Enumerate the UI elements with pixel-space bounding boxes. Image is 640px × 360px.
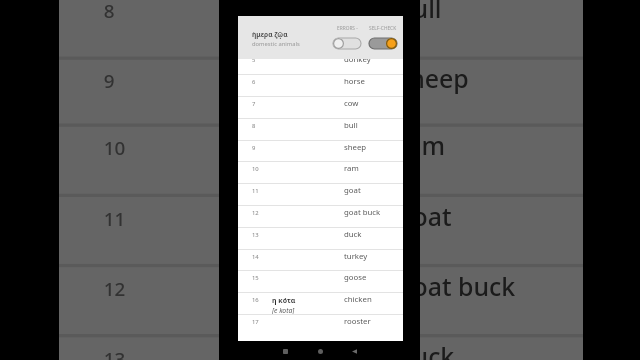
staticText: 9 — [104, 69, 116, 95]
button[interactable]: 9 — [59, 57, 583, 127]
staticText: 11 — [252, 187, 259, 195]
staticText: rooster — [344, 316, 371, 327]
staticText: 13 — [252, 231, 259, 239]
staticText: chicken — [344, 294, 372, 305]
staticText: horse — [344, 76, 365, 87]
staticText: 10 — [104, 136, 126, 162]
staticText: bull — [397, 0, 442, 28]
staticText: 7 — [252, 100, 256, 108]
staticText: ram — [397, 130, 445, 165]
staticText: donkey — [344, 54, 371, 65]
button[interactable]: 11 — [59, 194, 583, 264]
button[interactable]: 14 — [238, 249, 403, 271]
button[interactable]: Home — [309, 341, 331, 360]
button[interactable]: 8 — [59, 0, 583, 57]
button[interactable]: 11 — [238, 183, 403, 205]
staticText: 15 — [252, 274, 259, 282]
staticText: duck — [397, 340, 454, 360]
staticText: goat — [344, 185, 361, 196]
staticText: 13 — [104, 347, 126, 360]
staticText: 9 — [252, 144, 256, 152]
staticText: domestic animals — [252, 40, 300, 48]
staticText: 8 — [252, 122, 256, 130]
button[interactable]: ERRORS - — [333, 25, 361, 49]
button[interactable]: 17 — [238, 314, 403, 336]
button[interactable]: ἡμερα ζῷα — [238, 16, 403, 59]
staticText: 12 — [252, 209, 259, 217]
button[interactable]: 12 — [59, 264, 583, 334]
button[interactable]: 9 — [238, 140, 403, 162]
staticText: sheep — [344, 142, 367, 153]
button[interactable]: 10 — [238, 161, 403, 183]
staticText: ERRORS - — [337, 25, 358, 32]
staticText: bull — [344, 120, 358, 131]
staticText: 5 — [252, 56, 256, 64]
staticText: SELF-CHECK — [369, 25, 397, 32]
staticText: [e kota] — [272, 306, 295, 315]
staticText: 17 — [252, 318, 259, 326]
button[interactable]: 7 — [238, 96, 403, 118]
button[interactable]: 16 — [238, 292, 403, 314]
staticText: goat buck — [344, 207, 381, 218]
button[interactable]: SELF-CHECK — [369, 25, 397, 49]
button[interactable]: 15 — [238, 270, 403, 292]
staticText: ram — [344, 163, 359, 174]
button[interactable]: Back — [343, 341, 365, 360]
staticText: 10 — [252, 165, 259, 173]
staticText: sheep — [397, 63, 470, 98]
button[interactable]: 12 — [238, 205, 403, 227]
staticText: 8 — [104, 0, 116, 25]
button[interactable]: 13 — [238, 227, 403, 249]
staticText: 14 — [252, 253, 259, 261]
button[interactable]: 8 — [238, 118, 403, 140]
staticText: ἡμερα ζῷα — [252, 30, 288, 39]
staticText: goose — [344, 272, 367, 283]
button[interactable]: 13 — [59, 334, 583, 360]
staticText: 12 — [104, 277, 126, 302]
staticText: 16 — [252, 296, 259, 304]
staticText: 11 — [104, 206, 126, 232]
button[interactable]: Recents — [274, 341, 296, 360]
button[interactable]: 10 — [59, 124, 583, 194]
staticText: duck — [344, 229, 362, 240]
button[interactable]: 5 — [238, 52, 403, 74]
staticText: goat — [397, 200, 454, 235]
staticText: 6 — [252, 78, 256, 86]
staticText: η κότα — [272, 296, 296, 306]
staticText: cow — [344, 98, 359, 109]
staticText: turkey — [344, 251, 368, 262]
button[interactable]: 6 — [238, 74, 403, 96]
staticText: goat buck — [397, 270, 515, 305]
